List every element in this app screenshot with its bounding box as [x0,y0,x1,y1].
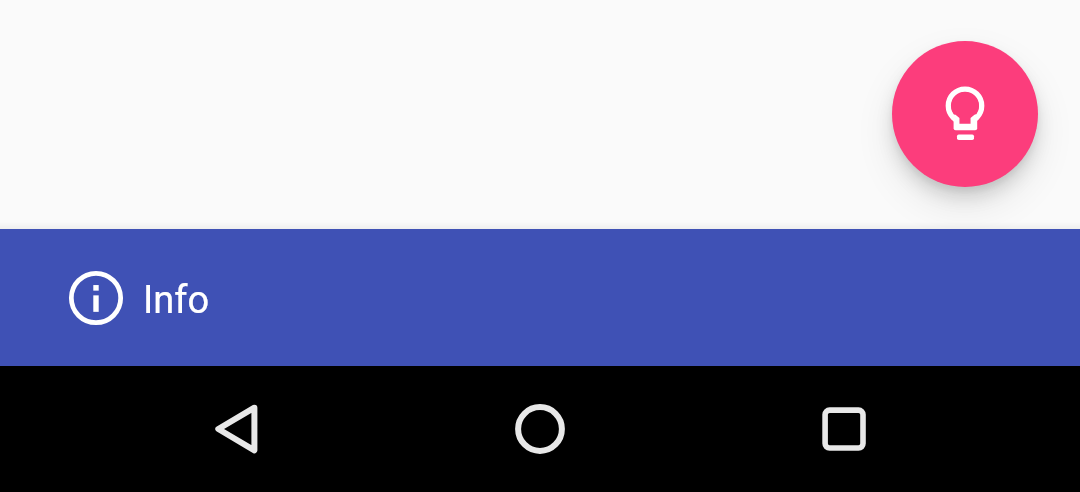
button[interactable]: Recent apps [720,366,1080,492]
staticText: Info [143,278,210,323]
button[interactable]: Tip of the day [892,41,1038,187]
button[interactable]: Back [0,366,360,492]
button[interactable]: Info [0,229,1080,366]
button[interactable]: Home [360,366,720,492]
